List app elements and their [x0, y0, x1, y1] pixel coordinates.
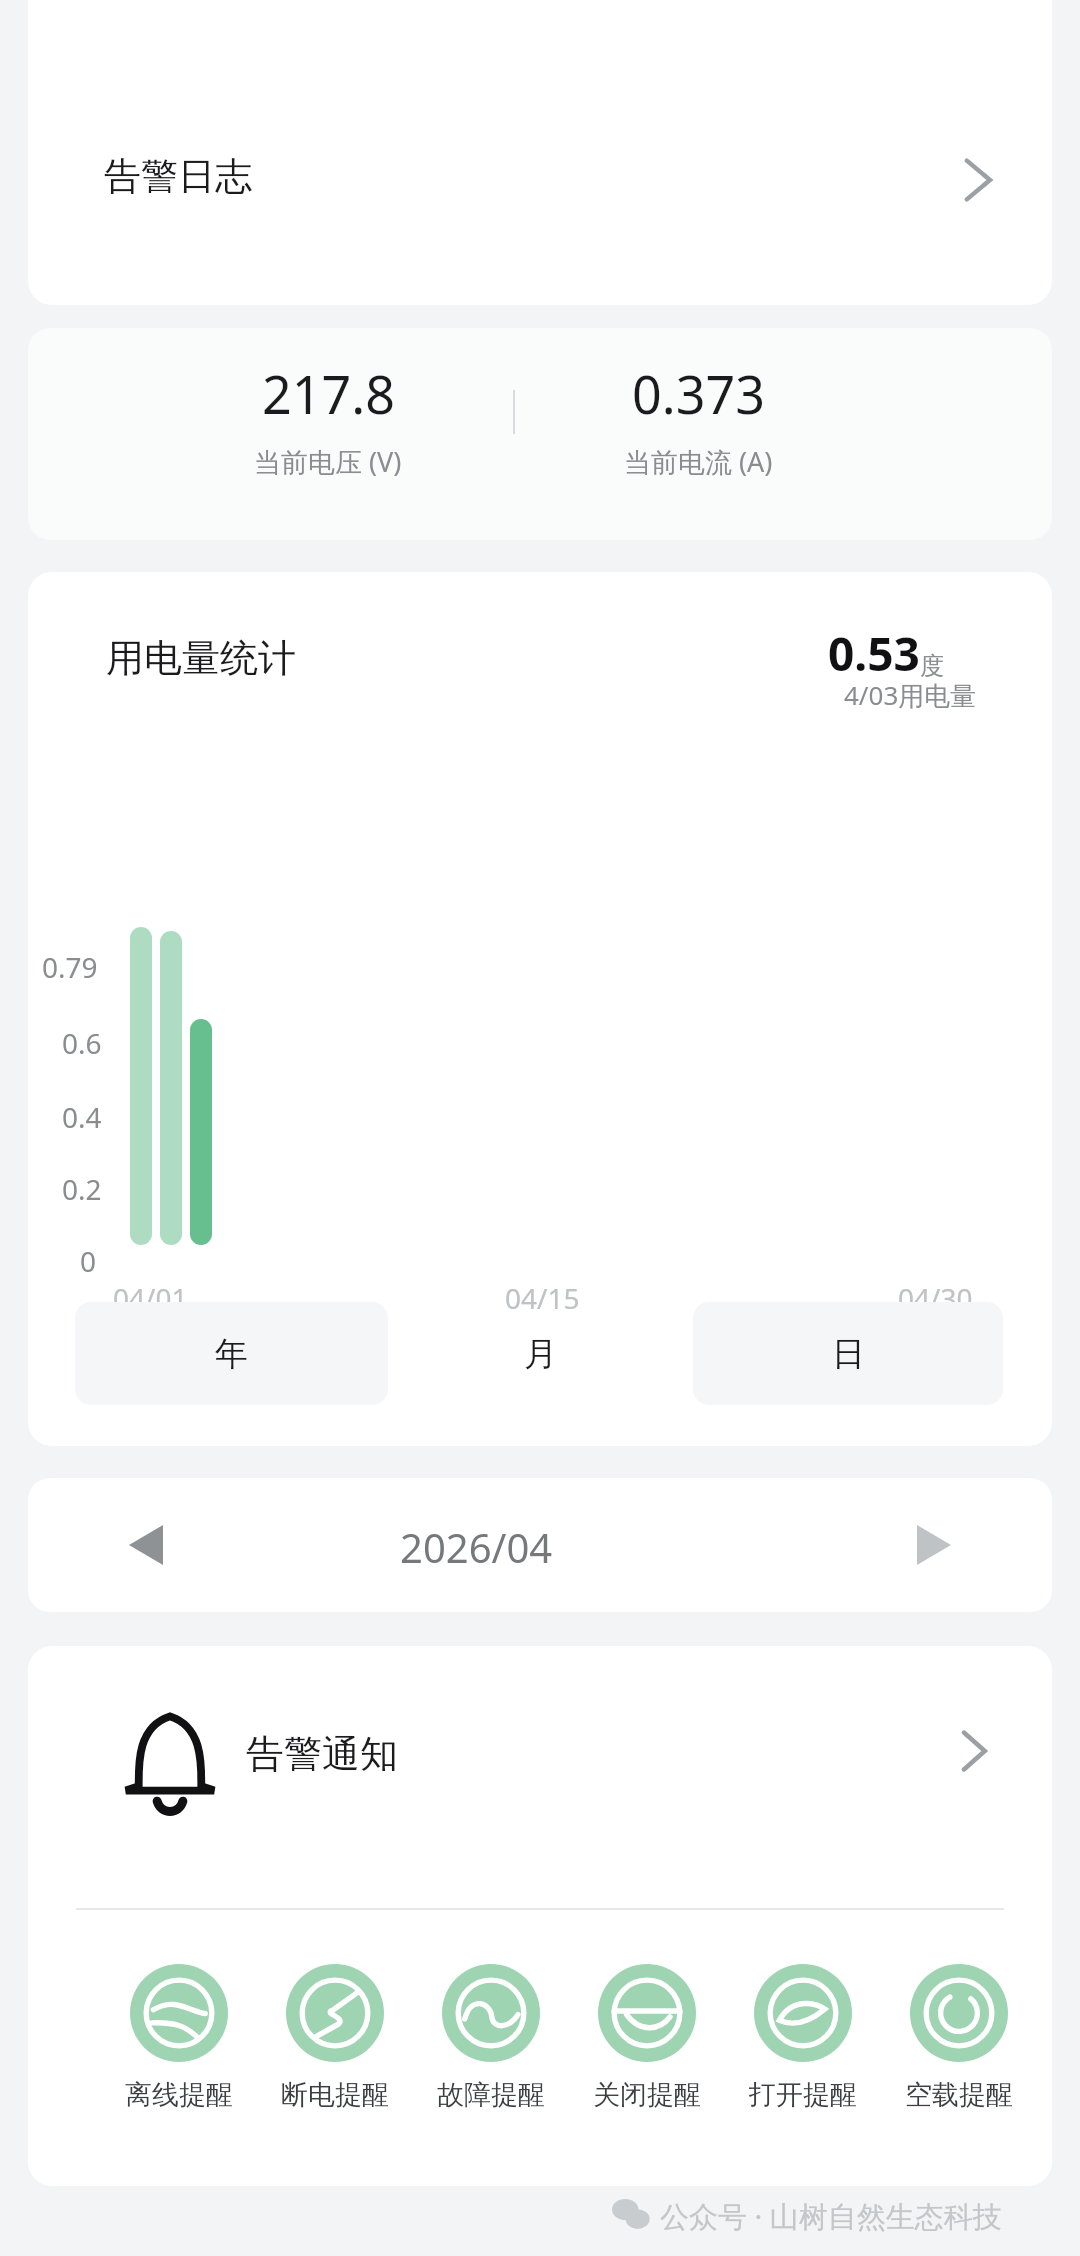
staticText: 日: [832, 1333, 865, 1375]
button[interactable]: 告警日志: [28, 0, 1052, 305]
button[interactable]: 打开提醒: [738, 1964, 868, 2112]
button[interactable]: 空载提醒: [894, 1964, 1024, 2112]
staticText: 年: [215, 1333, 248, 1375]
button[interactable]: 上一月: [108, 1508, 184, 1582]
staticText: 空载提醒: [905, 2078, 1013, 2112]
staticText: 0.6: [62, 1024, 102, 1062]
staticText: 0.4: [62, 1098, 102, 1136]
staticText: 打开提醒: [749, 2078, 857, 2112]
button[interactable]: 月: [398, 1302, 683, 1405]
staticText: 04/15: [505, 1279, 580, 1317]
staticText: 告警通知: [246, 1730, 398, 1778]
staticText: 断电提醒: [281, 2078, 389, 2112]
staticText: 当前电流 (A): [624, 443, 773, 480]
staticText: 217.8: [262, 358, 395, 429]
button[interactable]: 告警通知: [28, 1672, 1052, 1830]
staticText: 0: [80, 1242, 97, 1280]
staticText: 公众号 · 山树自然生态科技: [660, 2196, 1002, 2236]
staticText: 离线提醒: [125, 2078, 233, 2112]
staticText: 告警日志: [104, 153, 252, 200]
staticText: 关闭提醒: [593, 2078, 701, 2112]
other: 打开告警日志: [958, 158, 998, 202]
staticText: 2026/04: [400, 1520, 553, 1574]
staticText: 0.79: [42, 948, 98, 986]
button[interactable]: 离线提醒: [114, 1964, 244, 2112]
button[interactable]: 年: [75, 1302, 388, 1405]
staticText: 0.2: [62, 1170, 102, 1208]
staticText: 月: [524, 1333, 557, 1375]
staticText: 故障提醒: [437, 2078, 545, 2112]
button[interactable]: 故障提醒: [426, 1964, 556, 2112]
staticText: 度: [920, 651, 944, 681]
staticText: 04/01: [113, 1279, 188, 1317]
staticText: 4/03用电量: [844, 677, 977, 713]
staticText: 用电量统计: [106, 634, 296, 682]
button[interactable]: 关闭提醒: [582, 1964, 712, 2112]
staticText: 0.373: [632, 358, 765, 429]
staticText: 当前电压 (V): [254, 443, 402, 480]
staticText: 04/30: [898, 1279, 973, 1317]
button[interactable]: 断电提醒: [270, 1964, 400, 2112]
button[interactable]: 下一月: [896, 1508, 972, 1582]
staticText: 0.53: [828, 622, 920, 685]
button[interactable]: 日: [693, 1302, 1003, 1405]
